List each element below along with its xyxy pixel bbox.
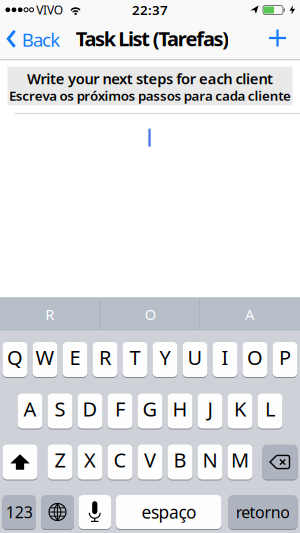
staticText: G [142, 395, 157, 422]
staticText: U [187, 344, 202, 371]
button[interactable]: N [197, 444, 222, 479]
button[interactable]: M [227, 444, 252, 479]
button[interactable]: C [107, 444, 132, 479]
button[interactable]: A [17, 393, 42, 428]
staticText: L [265, 395, 275, 422]
button[interactable]: B [167, 444, 192, 479]
staticText: V [144, 446, 156, 473]
button[interactable]: Back [0, 18, 66, 60]
staticText: J [207, 395, 212, 422]
staticText: 123 [6, 501, 33, 523]
button[interactable] [263, 23, 292, 52]
button[interactable]: retorno [228, 495, 297, 529]
staticText: T [129, 344, 140, 371]
staticText: A [23, 395, 36, 422]
staticText: R [99, 344, 111, 371]
staticText: Y [159, 344, 170, 371]
button[interactable]: G [137, 393, 162, 428]
staticText: VIVO [36, 2, 63, 18]
button[interactable]: U [182, 342, 207, 377]
button[interactable]: J [197, 393, 222, 428]
button[interactable] [78, 495, 111, 529]
staticText: F [115, 395, 125, 422]
button[interactable]: F [107, 393, 132, 428]
button[interactable]: D [77, 393, 102, 428]
staticText: O [145, 304, 156, 324]
button[interactable]: I [212, 342, 237, 377]
button[interactable] [262, 444, 297, 479]
button[interactable]: Z [47, 444, 72, 479]
button[interactable]: A [200, 297, 299, 331]
staticText: 22:37 [132, 1, 168, 19]
button[interactable]: O [100, 297, 199, 331]
button[interactable]: R [92, 342, 117, 377]
staticText: I [221, 344, 228, 371]
button[interactable]: P [272, 342, 297, 377]
staticText: Task List (Tarefas) [76, 25, 229, 52]
staticText: P [279, 344, 291, 371]
button[interactable]: O [242, 342, 267, 377]
staticText: D [82, 395, 97, 422]
button[interactable]: R [0, 297, 99, 331]
button[interactable] [2, 444, 37, 479]
staticText: X [84, 446, 96, 473]
staticText: espaço [141, 500, 196, 523]
button[interactable]: 123 [2, 495, 36, 529]
staticText: Back [22, 27, 60, 52]
button[interactable]: K [227, 393, 252, 428]
staticText: K [234, 395, 246, 422]
button[interactable]: Q [2, 342, 27, 377]
staticText: B [173, 446, 186, 473]
staticText: H [172, 395, 187, 422]
button[interactable]: V [137, 444, 162, 479]
button[interactable]: E [62, 342, 87, 377]
button[interactable]: X [77, 444, 102, 479]
staticText: E [69, 344, 80, 371]
staticText: M [231, 446, 249, 473]
staticText: N [202, 446, 217, 473]
staticText: A [245, 304, 254, 324]
button[interactable]: L [257, 393, 282, 428]
button[interactable]: espaço [116, 495, 221, 529]
staticText: Write your next steps for each client [27, 69, 273, 88]
button[interactable]: Y [152, 342, 177, 377]
staticText: W [35, 344, 54, 371]
button[interactable]: T [122, 342, 147, 377]
staticText: Q [7, 344, 23, 371]
staticText: Z [54, 446, 65, 473]
staticText: retorno [236, 501, 290, 523]
staticText: Escreva os próximos passos para cada cli… [9, 87, 291, 104]
staticText: S [54, 395, 65, 422]
button[interactable]: S [47, 393, 72, 428]
staticText: C [113, 446, 126, 473]
staticText: O [247, 344, 263, 371]
button[interactable]: W [32, 342, 57, 377]
staticText: R [45, 304, 54, 324]
button[interactable] [41, 495, 74, 529]
button[interactable]: H [167, 393, 192, 428]
